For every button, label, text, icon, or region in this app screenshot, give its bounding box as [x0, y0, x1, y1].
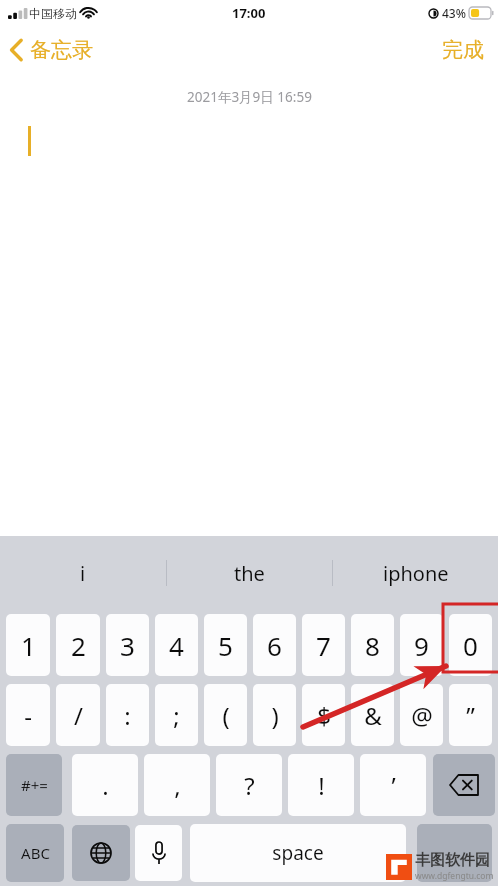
staticText: 备忘录 — [30, 37, 93, 63]
button[interactable]: 0 — [449, 614, 492, 676]
staticText: the — [234, 560, 265, 587]
staticText: 4 — [169, 628, 184, 663]
button[interactable]: ? — [216, 754, 282, 816]
staticText: 1 — [21, 628, 36, 663]
button[interactable]: 4 — [155, 614, 198, 676]
staticText: ) — [271, 699, 279, 732]
button[interactable]: @ — [400, 684, 443, 746]
button[interactable]: 6 — [253, 614, 296, 676]
button[interactable]: Dictation — [135, 825, 182, 881]
staticText: 5 — [218, 628, 233, 663]
staticText: ’ — [391, 769, 396, 802]
staticText: www.dgfengtu.com — [415, 870, 494, 882]
button[interactable]: / — [56, 684, 100, 746]
button[interactable]: & — [351, 684, 394, 746]
staticText: ( — [222, 699, 230, 732]
button[interactable]: #+= — [6, 754, 62, 816]
button[interactable]: Return — [417, 824, 492, 882]
staticText: 丰图软件园 — [415, 851, 490, 870]
staticText: 2021年3月9日 16:59 — [187, 88, 312, 106]
staticText: ? — [244, 769, 255, 802]
button[interactable]: 5 — [204, 614, 247, 676]
button[interactable]: iphone — [333, 536, 498, 610]
staticText: #+= — [21, 775, 48, 795]
staticText: - — [24, 699, 32, 732]
staticText: iphone — [383, 560, 449, 587]
staticText: 6 — [267, 628, 282, 663]
button[interactable]: 2 — [56, 614, 100, 676]
staticText: $ — [317, 699, 331, 732]
button[interactable]: the — [167, 536, 332, 610]
button[interactable]: 3 — [106, 614, 149, 676]
staticText: ” — [466, 699, 475, 732]
staticText: 8 — [365, 628, 380, 663]
button[interactable]: ” — [449, 684, 492, 746]
button[interactable]: ’ — [360, 754, 426, 816]
button[interactable]: - — [6, 684, 50, 746]
staticText: 完成 — [442, 37, 484, 63]
button[interactable]: ! — [288, 754, 354, 816]
staticText: @ — [411, 699, 433, 732]
staticText: . — [102, 769, 109, 802]
button[interactable]: 8 — [351, 614, 394, 676]
staticText: 中国移动 — [29, 6, 77, 21]
staticText: ; — [173, 699, 180, 732]
button[interactable]: 1 — [6, 614, 50, 676]
button[interactable]: space — [190, 824, 406, 882]
button[interactable]: Change keyboard — [72, 825, 130, 881]
button[interactable]: 9 — [400, 614, 443, 676]
staticText: 7 — [316, 628, 331, 663]
staticText: ABC — [21, 843, 50, 863]
staticText: 17:00 — [232, 4, 266, 22]
button[interactable]: ( — [204, 684, 247, 746]
staticText: space — [272, 840, 324, 866]
button[interactable]: 完成 — [428, 37, 498, 63]
staticText: 9 — [414, 628, 429, 663]
button[interactable]: : — [106, 684, 149, 746]
button[interactable]: Backspace — [433, 754, 495, 816]
button[interactable]: i — [0, 536, 166, 610]
button[interactable]: 7 — [302, 614, 345, 676]
staticText: : — [124, 699, 131, 732]
staticText: & — [364, 699, 382, 732]
button[interactable]: $ — [302, 684, 345, 746]
staticText: 3 — [120, 628, 135, 663]
button[interactable]: 备忘录 — [0, 37, 103, 63]
button[interactable]: . — [72, 754, 138, 816]
button[interactable]: , — [144, 754, 210, 816]
button[interactable]: ; — [155, 684, 198, 746]
button[interactable]: ABC — [6, 824, 64, 882]
staticText: 2 — [71, 628, 86, 663]
staticText: 43% — [442, 5, 466, 21]
staticText: / — [74, 699, 83, 732]
button[interactable]: ) — [253, 684, 296, 746]
staticText: , — [174, 769, 181, 802]
staticText: i — [80, 560, 86, 587]
staticText: 0 — [463, 628, 478, 663]
staticText: ! — [318, 769, 325, 802]
